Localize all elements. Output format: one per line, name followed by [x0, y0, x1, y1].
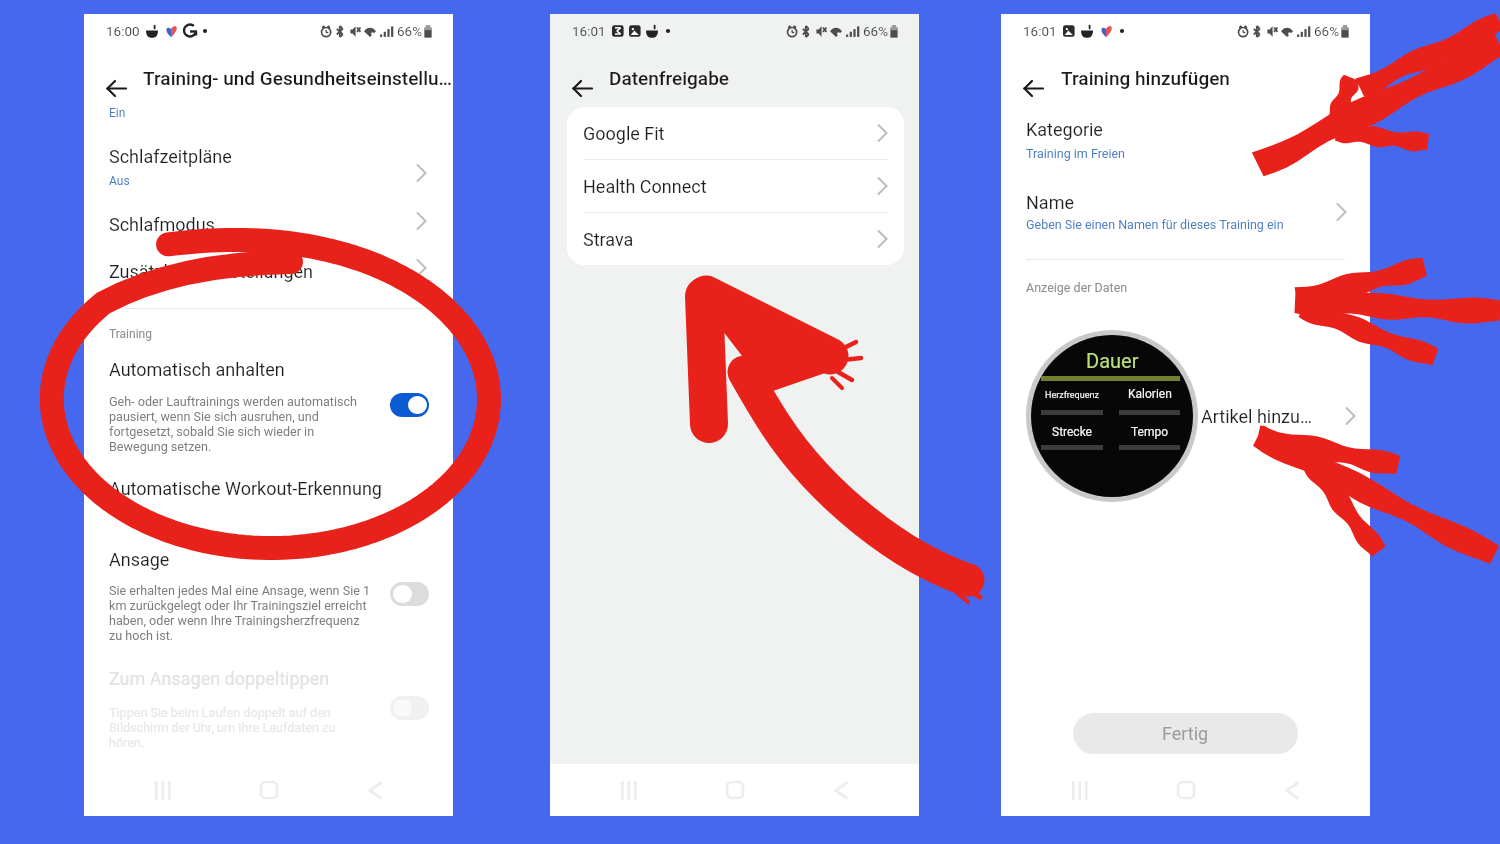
button[interactable]: Back — [819, 768, 863, 812]
staticText: Training hinzufügen — [1061, 67, 1373, 89]
button[interactable] — [84, 206, 453, 250]
button[interactable]: Strava — [567, 212, 904, 265]
staticText: Anzeige der Daten — [1026, 280, 1128, 295]
button[interactable] — [1001, 114, 1370, 170]
staticText: Automatisch anhalten — [109, 359, 285, 380]
staticText: Ansage — [109, 549, 170, 570]
staticText: Training im Freien — [1026, 146, 1125, 161]
staticText: 16:00 — [106, 23, 140, 39]
staticText: 16:01 — [1023, 23, 1057, 39]
staticText: Schlafmodus — [109, 214, 215, 235]
button[interactable] — [84, 254, 453, 298]
staticText: Zum Ansagen doppeltippen — [109, 668, 330, 689]
button[interactable]: Back — [353, 768, 397, 812]
button[interactable]: Back — [1019, 74, 1047, 102]
staticText: Zusätzliche Einstellungen — [109, 261, 314, 282]
staticText: Kalorien — [1128, 387, 1172, 401]
button[interactable]: Turn off — [390, 393, 429, 417]
staticText: Ein — [109, 106, 126, 120]
button[interactable]: Google Fit — [567, 107, 904, 159]
button[interactable] — [84, 150, 453, 202]
button[interactable] — [1001, 190, 1370, 246]
staticText: Name — [1026, 192, 1074, 213]
button[interactable]: Artikel hinzu… — [1201, 394, 1357, 438]
staticText: Automatische Workout-Erkennung — [109, 478, 382, 499]
staticText: Datenfreigabe — [609, 67, 921, 89]
button[interactable]: Health Connect — [567, 159, 904, 212]
staticText: Training — [109, 327, 152, 341]
staticText: Strava — [583, 229, 876, 250]
staticText: Aus — [109, 174, 130, 188]
button[interactable]: Home — [247, 768, 291, 812]
staticText: 66% — [397, 23, 423, 39]
button[interactable]: Back — [102, 74, 130, 102]
staticText: Artikel hinzu… — [1201, 406, 1344, 427]
button[interactable]: Turn on — [390, 696, 429, 720]
staticText: Tippen Sie beim Laufen doppelt auf den B… — [109, 705, 336, 750]
staticText: Sie erhalten jedes Mal eine Ansage, wenn… — [109, 583, 371, 643]
staticText: 16:01 — [572, 23, 606, 39]
staticText: Dauer — [1086, 349, 1139, 372]
staticText: Kategorie — [1026, 119, 1103, 140]
button[interactable]: Recent apps — [606, 768, 650, 812]
button[interactable]: Recent apps — [1057, 768, 1101, 812]
staticText: 66% — [1314, 23, 1340, 39]
button[interactable]: Home — [1164, 768, 1208, 812]
staticText: Google Fit — [583, 123, 876, 144]
staticText: Geben Sie einen Namen für dieses Trainin… — [1026, 217, 1284, 232]
staticText: Fertig — [1162, 723, 1209, 744]
staticText: Health Connect — [583, 176, 876, 197]
button[interactable]: Fertig — [1073, 713, 1298, 754]
staticText: Geh- oder Lauftrainings werden automatis… — [109, 394, 358, 454]
staticText: Training- und Gesundheitseinstellu… — [143, 67, 455, 89]
button[interactable]: Back — [568, 74, 596, 102]
staticText: Strecke — [1052, 425, 1092, 439]
button[interactable]: Home — [713, 768, 757, 812]
button[interactable]: Back — [1270, 768, 1314, 812]
staticText: Herzfrequenz — [1045, 390, 1099, 401]
staticText: Tempo — [1131, 425, 1169, 439]
button[interactable]: Turn on — [390, 582, 429, 606]
staticText: Schlafzeitpläne — [109, 146, 232, 167]
staticText: 66% — [863, 23, 889, 39]
button[interactable]: Recent apps — [140, 768, 184, 812]
